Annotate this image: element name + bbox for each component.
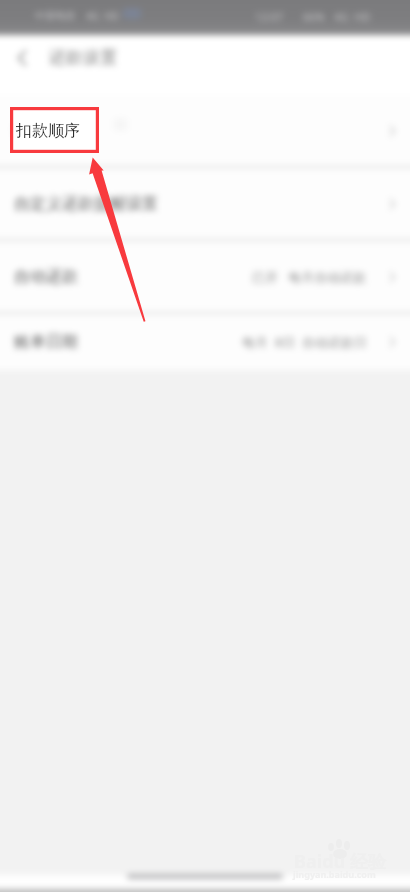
staticText: 中国电信 (35, 9, 75, 22)
button[interactable]: 扣款顺序 (10, 107, 99, 153)
staticText: 4G HD (334, 9, 371, 24)
staticText: 66% (303, 9, 325, 24)
staticText: 12:07 (255, 9, 284, 24)
button[interactable]: 自定义还款提醒设置 (0, 168, 410, 239)
staticText: 扣款顺序 (14, 121, 78, 141)
staticText: 4G (86, 9, 99, 23)
staticText: jingyan.baidu.com (293, 868, 376, 880)
staticText: 扣款顺序 (16, 121, 80, 141)
staticText: 自动还款 (14, 267, 78, 287)
staticText: 每月 8日 自动还款日 (242, 333, 367, 351)
button[interactable]: 自动还款 (0, 241, 410, 312)
staticText: 还款设置 (49, 47, 117, 68)
staticText: 自定义还款提醒设置 (14, 194, 158, 214)
staticText: 已开 每月自动还款 (252, 268, 367, 286)
staticText: HD (104, 9, 119, 23)
staticText: 账单日期 (14, 332, 78, 352)
button[interactable]: 扣款顺序 (0, 95, 410, 166)
button[interactable]: 账单日期 (0, 314, 410, 370)
button[interactable]: Back (7, 41, 37, 75)
